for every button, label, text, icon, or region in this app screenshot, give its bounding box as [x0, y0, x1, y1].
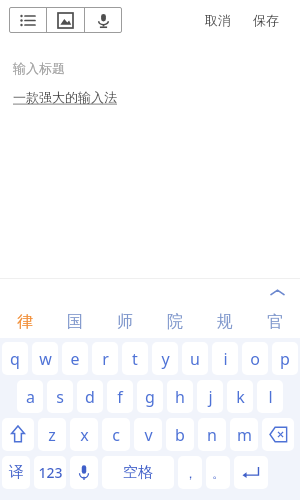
staticText: 规: [217, 312, 233, 332]
staticText: m: [237, 424, 252, 446]
staticText: q: [10, 348, 20, 370]
button[interactable]: 译: [2, 456, 30, 489]
button[interactable]: u: [182, 342, 208, 375]
staticText: b: [175, 424, 185, 446]
button[interactable]: e: [62, 342, 88, 375]
button[interactable]: 保存: [248, 7, 284, 33]
button[interactable]: j: [197, 380, 223, 413]
staticText: ，: [184, 465, 197, 481]
staticText: x: [80, 424, 89, 446]
button[interactable]: 。: [206, 456, 230, 489]
button[interactable]: n: [198, 418, 226, 451]
button[interactable]: g: [137, 380, 163, 413]
staticText: d: [85, 386, 95, 408]
button[interactable]: r: [92, 342, 118, 375]
staticText: o: [250, 348, 260, 370]
staticText: s: [56, 386, 64, 408]
staticText: y: [161, 348, 170, 370]
button[interactable]: b: [166, 418, 194, 451]
button[interactable]: Insert image: [47, 7, 84, 33]
staticText: 输入标题: [13, 60, 65, 76]
staticText: p: [280, 348, 290, 370]
staticText: j: [208, 386, 213, 408]
button[interactable]: 123: [34, 456, 66, 489]
button[interactable]: List: [9, 7, 46, 33]
button[interactable]: 院: [150, 305, 200, 338]
staticText: i: [223, 348, 228, 370]
staticText: 一款强大的输入法: [13, 89, 117, 105]
button[interactable]: l: [257, 380, 283, 413]
button[interactable]: i: [212, 342, 238, 375]
button[interactable]: o: [242, 342, 268, 375]
button[interactable]: Enter: [234, 456, 268, 489]
button[interactable]: 律: [0, 305, 50, 338]
staticText: 院: [167, 312, 183, 332]
staticText: r: [102, 348, 109, 370]
staticText: 师: [117, 312, 133, 332]
button[interactable]: c: [102, 418, 130, 451]
button[interactable]: a: [17, 380, 43, 413]
button[interactable]: q: [2, 342, 28, 375]
button[interactable]: t: [122, 342, 148, 375]
button[interactable]: v: [134, 418, 162, 451]
button[interactable]: Backspace: [262, 418, 294, 451]
button[interactable]: ，: [178, 456, 202, 489]
button[interactable]: 官: [250, 305, 300, 338]
staticText: n: [207, 424, 217, 446]
staticText: 空格: [123, 463, 153, 482]
staticText: 取消: [205, 12, 231, 28]
staticText: u: [190, 348, 200, 370]
button[interactable]: z: [38, 418, 66, 451]
button[interactable]: s: [47, 380, 73, 413]
staticText: t: [132, 348, 138, 370]
staticText: k: [236, 386, 245, 408]
button[interactable]: p: [272, 342, 298, 375]
staticText: 保存: [253, 12, 279, 28]
button[interactable]: k: [227, 380, 253, 413]
button[interactable]: Voice input: [70, 456, 98, 489]
staticText: 。: [212, 465, 225, 481]
staticText: 官: [267, 312, 283, 332]
button[interactable]: y: [152, 342, 178, 375]
button[interactable]: f: [107, 380, 133, 413]
staticText: 国: [67, 312, 83, 332]
staticText: f: [117, 386, 123, 408]
button[interactable]: w: [32, 342, 58, 375]
staticText: 译: [9, 463, 24, 482]
staticText: v: [144, 424, 153, 446]
button[interactable]: Shift: [2, 418, 34, 451]
button[interactable]: 师: [100, 305, 150, 338]
staticText: c: [112, 424, 120, 446]
button[interactable]: 输入标题: [0, 40, 300, 278]
staticText: 123: [38, 463, 63, 482]
staticText: 律: [17, 312, 33, 332]
button[interactable]: 取消: [200, 7, 236, 33]
staticText: a: [26, 386, 35, 408]
button[interactable]: Expand candidates: [266, 281, 288, 303]
staticText: z: [48, 424, 56, 446]
button[interactable]: Voice input: [85, 7, 122, 33]
button[interactable]: 规: [200, 305, 250, 338]
staticText: h: [175, 386, 185, 408]
button[interactable]: h: [167, 380, 193, 413]
staticText: w: [39, 348, 52, 370]
staticText: l: [268, 386, 273, 408]
button[interactable]: 空格: [102, 456, 174, 489]
staticText: g: [145, 386, 155, 408]
button[interactable]: x: [70, 418, 98, 451]
button[interactable]: m: [230, 418, 258, 451]
staticText: e: [70, 348, 80, 370]
button[interactable]: 国: [50, 305, 100, 338]
button[interactable]: d: [77, 380, 103, 413]
